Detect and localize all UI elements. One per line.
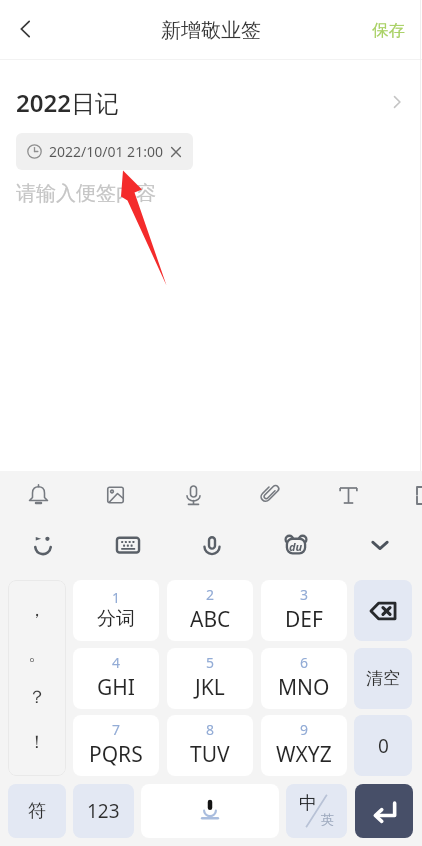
button[interactable]: Backspace bbox=[354, 580, 412, 641]
staticText: 3 bbox=[300, 585, 309, 604]
button[interactable]: 保存 bbox=[355, 0, 422, 60]
button[interactable]: ， bbox=[8, 580, 66, 776]
button[interactable]: 5 bbox=[167, 648, 253, 709]
button[interactable]: Back bbox=[0, 0, 52, 60]
button[interactable]: Image bbox=[91, 471, 139, 519]
staticText: 新增敬业签 bbox=[161, 18, 261, 43]
button[interactable]: 0 bbox=[354, 715, 412, 776]
staticText: 清空 bbox=[366, 668, 400, 689]
staticText: 0 bbox=[378, 733, 389, 759]
staticText: 英 bbox=[321, 811, 334, 827]
staticText: 符 bbox=[28, 800, 46, 823]
staticText: 2022/10/01 21:00 bbox=[49, 142, 163, 161]
button[interactable]: Hide keyboard bbox=[338, 519, 422, 571]
button[interactable]: Scan bbox=[401, 471, 422, 519]
staticText: 123 bbox=[87, 798, 120, 824]
button[interactable]: Voice bbox=[169, 471, 217, 519]
staticText: 2022日记 bbox=[16, 86, 119, 119]
button[interactable]: 符 bbox=[8, 784, 66, 838]
button[interactable]: 1 bbox=[73, 580, 159, 641]
button[interactable]: 123 bbox=[73, 784, 134, 838]
button[interactable]: 中 bbox=[286, 784, 347, 838]
button[interactable]: Keyboard bbox=[85, 519, 170, 571]
button[interactable]: Space / voice input bbox=[141, 784, 279, 838]
button[interactable]: Enter bbox=[355, 784, 413, 838]
staticText: 。 bbox=[28, 643, 46, 666]
staticText: TUV bbox=[190, 740, 230, 769]
staticText: DEF bbox=[285, 605, 323, 634]
staticText: ？ bbox=[28, 686, 46, 709]
staticText: 请输入便签内容 bbox=[16, 181, 156, 206]
staticText: MNO bbox=[278, 673, 330, 702]
staticText: ABC bbox=[190, 605, 231, 634]
button[interactable]: Reminder bbox=[14, 471, 62, 519]
staticText: 分词 bbox=[97, 607, 135, 631]
button[interactable]: 8 bbox=[167, 715, 253, 776]
staticText: du bbox=[289, 539, 303, 554]
button[interactable]: 9 bbox=[261, 715, 347, 776]
staticText: 1 bbox=[112, 588, 121, 607]
button[interactable]: 2 bbox=[167, 580, 253, 641]
button[interactable]: Input method bbox=[254, 519, 338, 571]
button[interactable]: Attachment bbox=[246, 471, 294, 519]
staticText: ， bbox=[28, 599, 46, 622]
button[interactable]: 4 bbox=[73, 648, 159, 709]
button[interactable]: 清空 bbox=[354, 648, 412, 709]
staticText: 9 bbox=[300, 720, 309, 739]
staticText: 7 bbox=[112, 720, 121, 739]
button[interactable]: 6 bbox=[261, 648, 347, 709]
staticText: 6 bbox=[300, 653, 309, 672]
staticText: PQRS bbox=[89, 740, 143, 769]
button[interactable]: 7 bbox=[73, 715, 159, 776]
button[interactable]: Voice input bbox=[170, 519, 254, 571]
staticText: 8 bbox=[206, 720, 215, 739]
staticText: GHI bbox=[97, 673, 135, 702]
button[interactable]: 2022日记 bbox=[0, 84, 422, 120]
staticText: 4 bbox=[112, 653, 121, 672]
button[interactable]: 2022/10/01 21:00 bbox=[16, 133, 193, 170]
button[interactable]: Text format bbox=[324, 471, 372, 519]
staticText: ！ bbox=[28, 731, 46, 754]
staticText: WXYZ bbox=[276, 740, 332, 769]
button[interactable]: 3 bbox=[261, 580, 347, 641]
staticText: 中 bbox=[299, 792, 317, 815]
staticText: 2 bbox=[206, 585, 215, 604]
staticText: 保存 bbox=[372, 20, 405, 41]
staticText: 5 bbox=[206, 653, 215, 672]
staticText: JKL bbox=[195, 673, 225, 702]
button[interactable]: Emoji bbox=[0, 519, 85, 571]
